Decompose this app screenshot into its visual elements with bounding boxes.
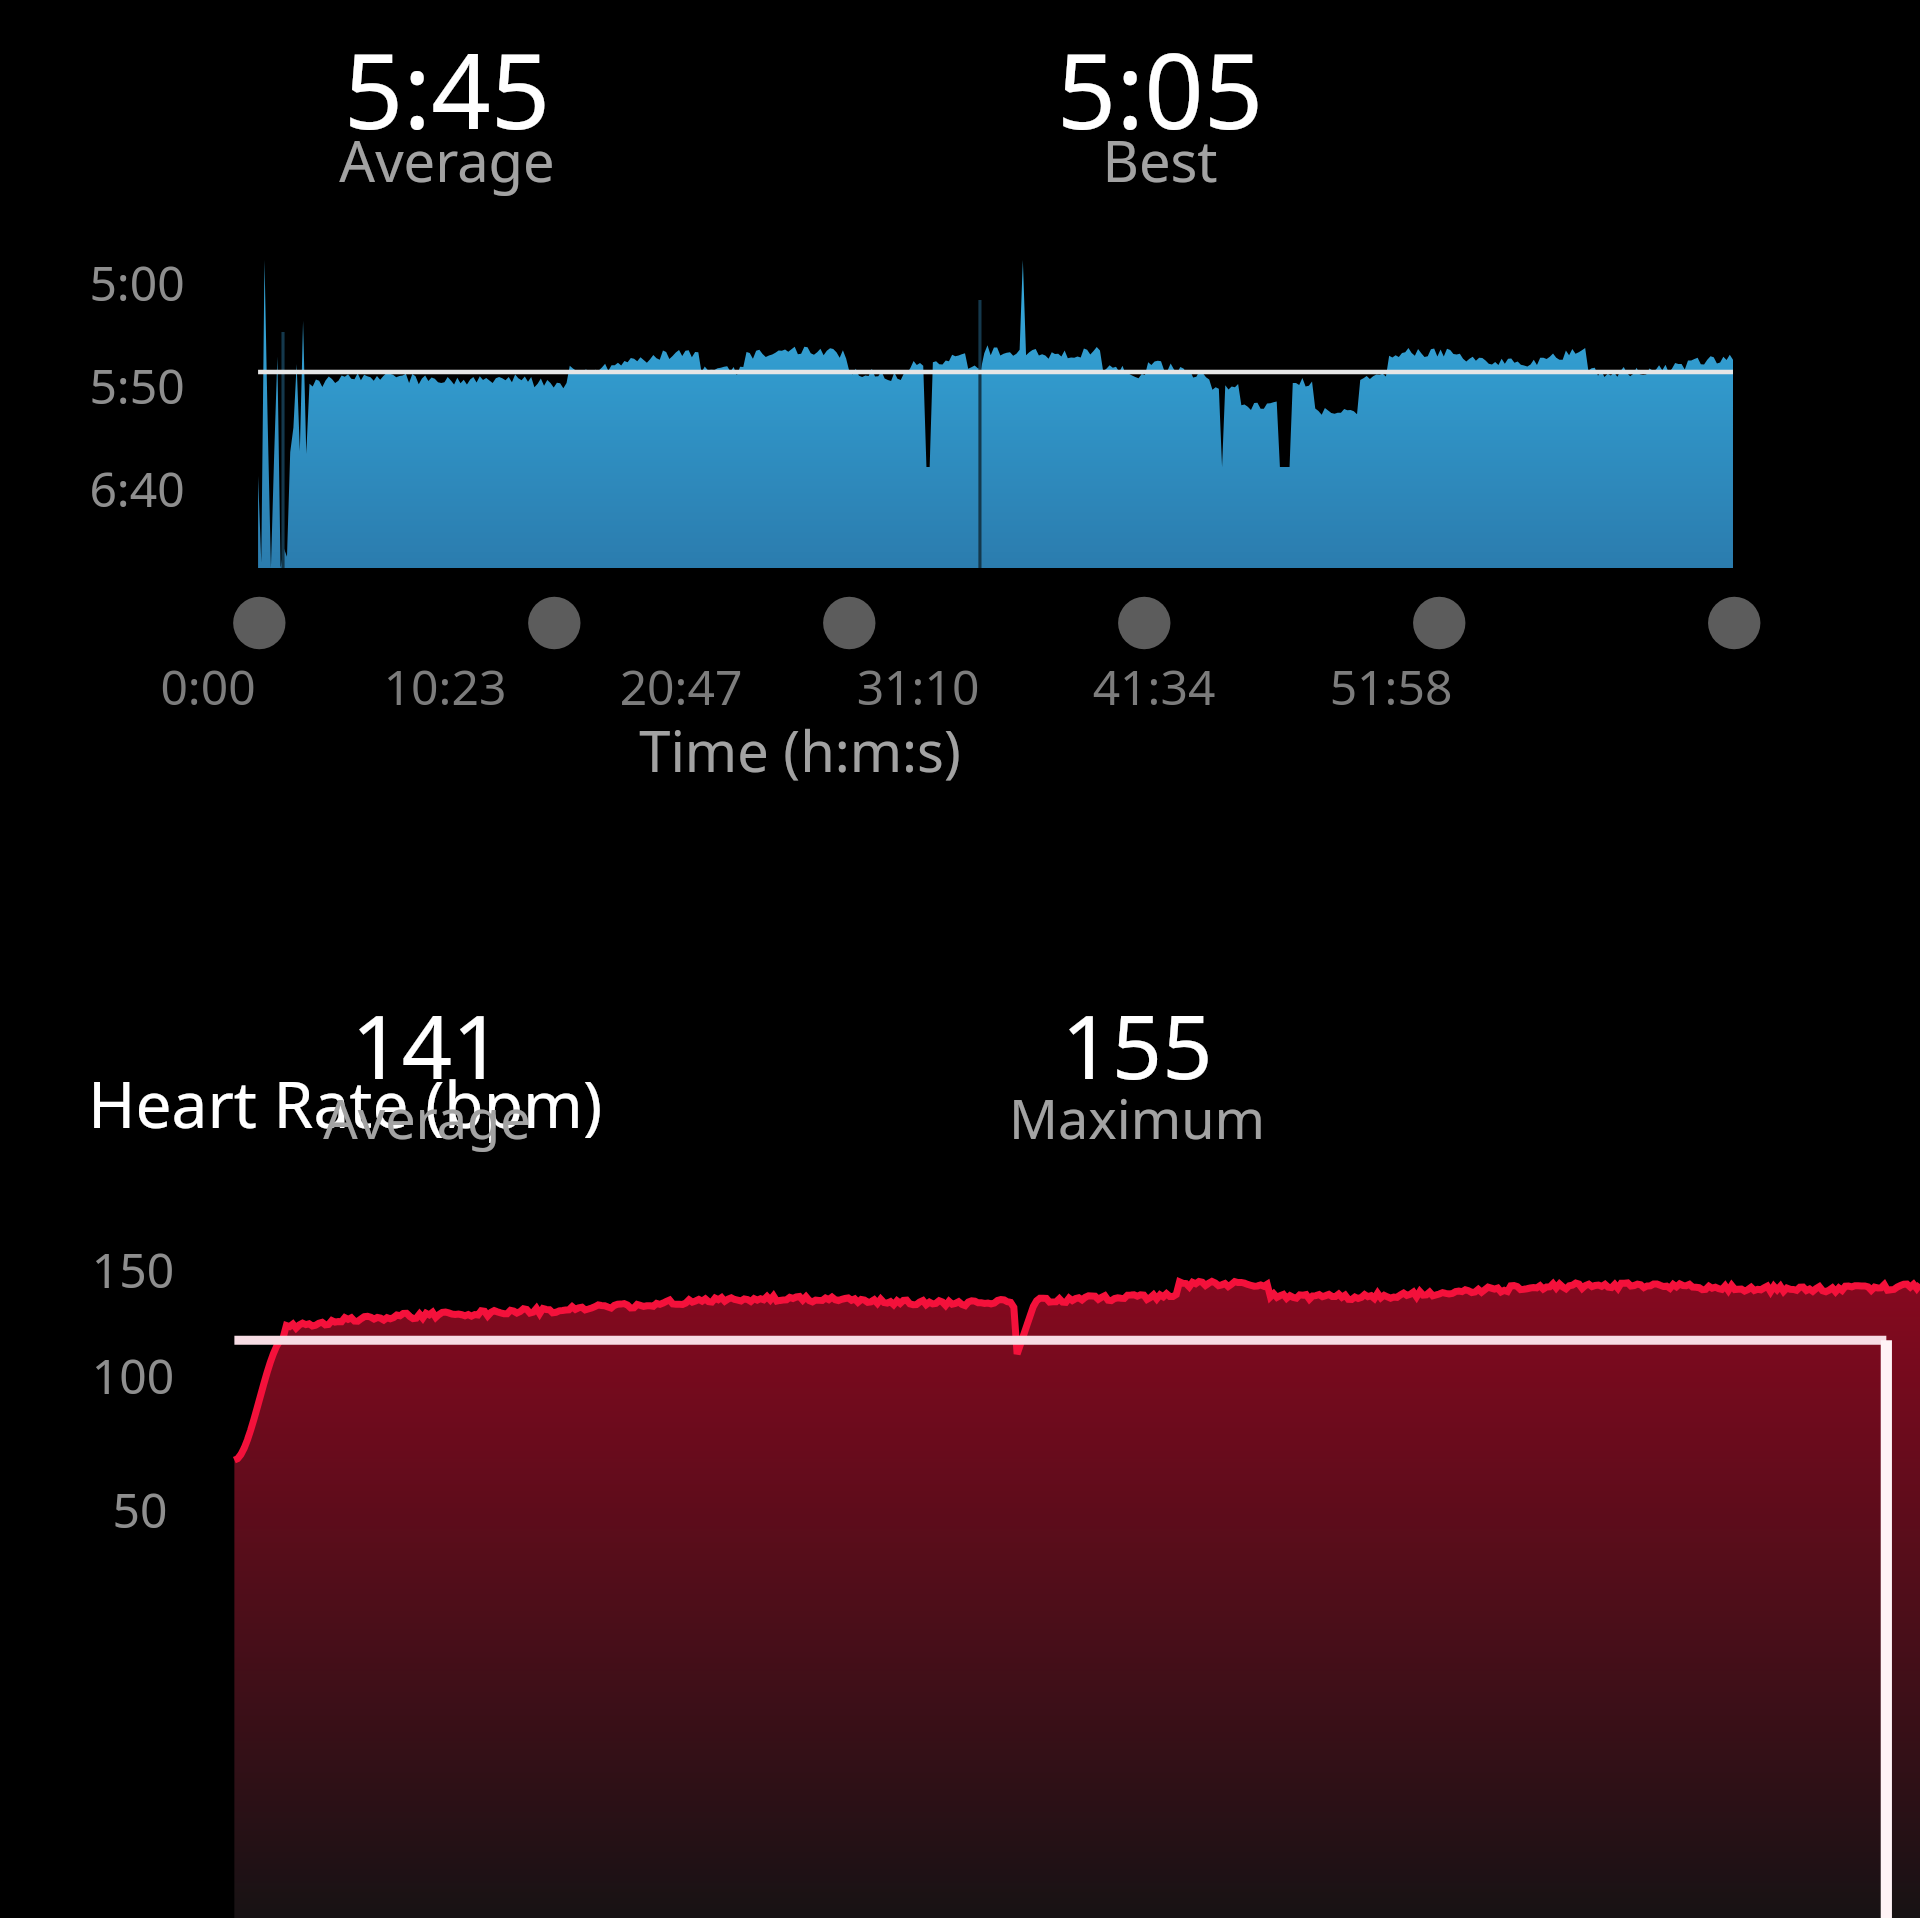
staticText: 0:00 [0,654,608,719]
staticText: 150 [0,1237,533,1302]
staticText: 155 [737,985,1537,1105]
staticText: 41:34 [754,654,1554,719]
staticText: 20:47 [281,654,1081,719]
staticText: Average [27,1081,827,1155]
staticText: 51:58 [991,654,1791,719]
staticText: 5:45 [47,18,847,160]
staticText: Best [760,122,1560,198]
staticText: 6:40 [0,456,537,521]
staticText: 50 [0,1477,540,1542]
staticText: Time (h:m:s) [400,712,1200,788]
staticText: 100 [0,1343,533,1408]
staticText: 141 [27,985,827,1105]
staticText: 31:10 [518,654,1318,719]
staticText: 5:00 [0,250,537,315]
staticText: 5:50 [0,353,537,418]
staticText: Maximum [737,1081,1537,1155]
staticText: Average [47,122,847,198]
staticText: 5:05 [760,18,1560,160]
button[interactable]: Pace and heart rate charts [0,0,1920,1918]
staticText: 10:23 [45,654,845,719]
staticText: Heart Rate (bpm) [88,1060,603,1147]
